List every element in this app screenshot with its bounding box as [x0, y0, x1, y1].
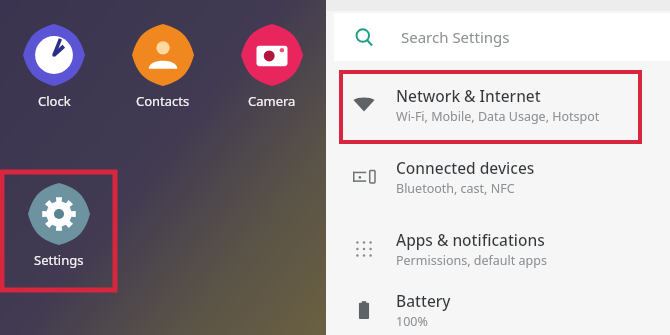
button[interactable]: Camera: [241, 24, 303, 110]
staticText: Camera: [248, 92, 296, 110]
button[interactable]: Battery: [326, 285, 670, 335]
staticText: Connected devices: [396, 157, 535, 178]
button[interactable]: Search: [334, 13, 670, 61]
other: Search: [355, 28, 374, 47]
button[interactable]: Apps & notifications: [326, 213, 670, 285]
staticText: Apps & notifications: [396, 229, 545, 250]
staticText: Search Settings: [401, 27, 510, 47]
staticText: Battery: [396, 290, 451, 311]
button[interactable]: Connected devices: [326, 141, 670, 213]
button[interactable]: Contacts: [132, 24, 194, 110]
staticText: Settings: [34, 251, 84, 269]
staticText: Clock: [38, 92, 71, 110]
button[interactable]: Clock: [23, 24, 85, 110]
staticText: Bluetooth, cast, NFC: [396, 180, 515, 197]
staticText: Wi-Fi, Mobile, Data Usage, Hotspot: [396, 108, 600, 125]
button[interactable]: Settings: [28, 183, 90, 269]
staticText: Network & Internet: [396, 85, 541, 106]
button[interactable]: Network & Internet: [326, 69, 670, 141]
staticText: 100%: [396, 313, 428, 330]
staticText: Permissions, default apps: [396, 252, 547, 269]
staticText: Contacts: [136, 92, 190, 110]
